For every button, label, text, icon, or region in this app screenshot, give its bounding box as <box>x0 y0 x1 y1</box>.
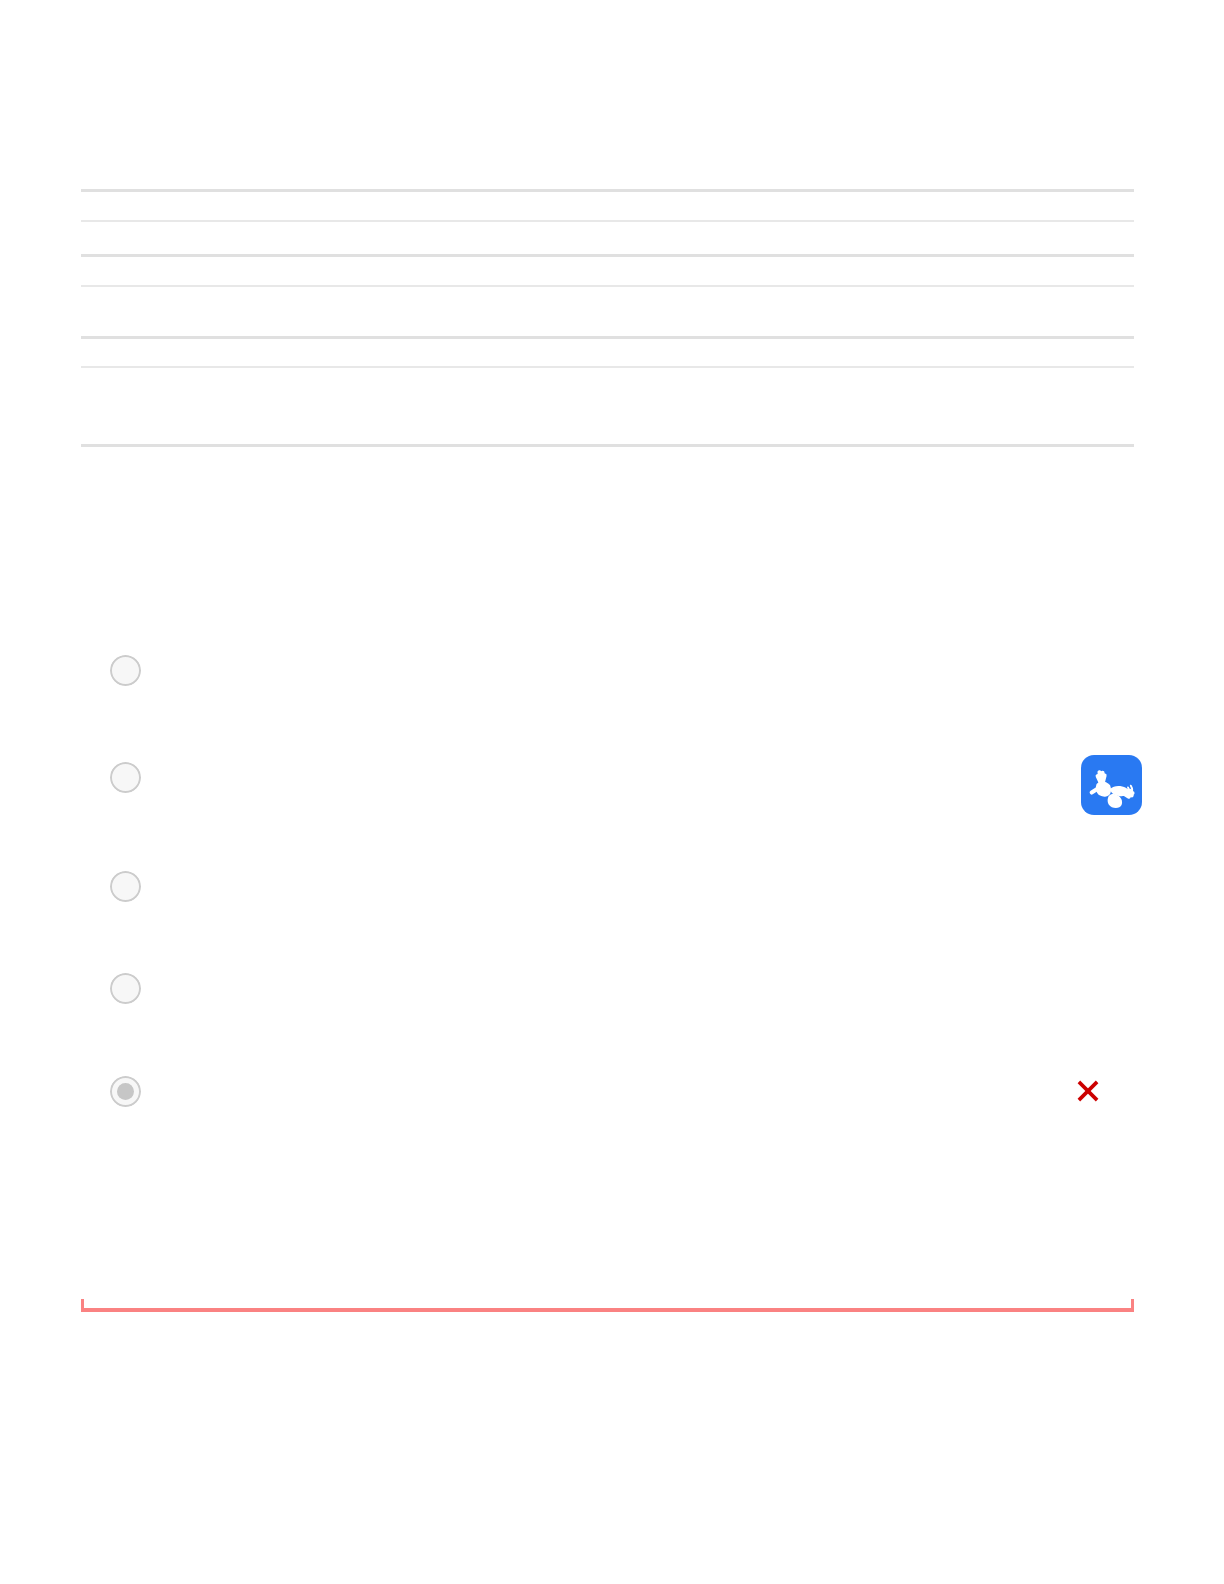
button[interactable]: Option 1 <box>101 646 149 694</box>
button[interactable] <box>81 1295 1134 1315</box>
button[interactable]: Option 4 <box>101 964 149 1012</box>
button[interactable]: Clear <box>1069 1072 1107 1110</box>
button[interactable]: Option 2 <box>101 753 149 801</box>
button[interactable]: Option 3 <box>101 862 149 910</box>
button[interactable]: Sign language interpretation <box>1081 755 1142 815</box>
button[interactable]: Option 5 <box>101 1067 149 1115</box>
